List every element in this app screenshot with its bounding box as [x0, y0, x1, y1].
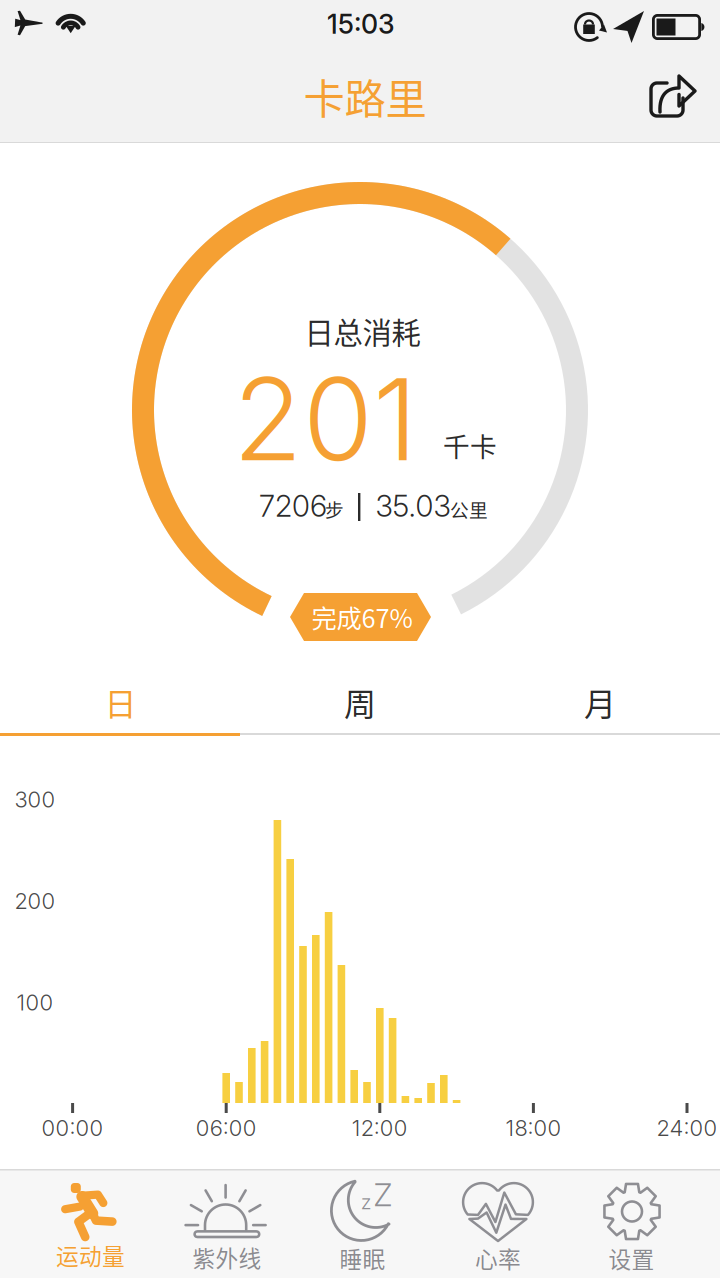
staticText: 7206: [259, 488, 327, 524]
staticText: 35.03: [375, 488, 450, 524]
staticText: 卡路里: [303, 66, 426, 126]
staticText: 设置: [608, 1242, 654, 1274]
staticText: 月: [584, 679, 616, 725]
button[interactable]: 心率: [426, 1170, 570, 1278]
button[interactable]: 周: [240, 666, 480, 738]
staticText: 周: [344, 679, 376, 725]
button[interactable]: 日: [0, 666, 240, 738]
staticText: 心率: [475, 1242, 521, 1274]
staticText: 100: [16, 989, 53, 1016]
button[interactable]: 卡路里: [235, 65, 495, 127]
staticText: 12:00: [352, 1115, 408, 1141]
staticText: 运动量: [56, 1239, 125, 1271]
staticText: 24:00: [656, 1115, 717, 1141]
button[interactable]: 运动量: [18, 1170, 162, 1278]
staticText: 201: [233, 350, 418, 487]
staticText: 步: [325, 495, 344, 522]
staticText: 公里: [450, 495, 488, 522]
staticText: 紫外线: [192, 1241, 261, 1273]
staticText: 日: [104, 679, 136, 725]
staticText: 00:00: [42, 1115, 104, 1141]
staticText: z: [361, 1190, 372, 1214]
staticText: 日总消耗: [304, 310, 420, 352]
button[interactable]: 月: [480, 666, 720, 738]
staticText: 300: [14, 786, 55, 813]
button[interactable]: z: [290, 1170, 434, 1278]
staticText: 18:00: [505, 1115, 561, 1141]
button[interactable]: 紫外线: [155, 1170, 299, 1278]
staticText: 200: [14, 888, 55, 914]
staticText: Z: [373, 1176, 392, 1213]
staticText: 06:00: [196, 1115, 257, 1141]
button[interactable]: 设置: [559, 1170, 703, 1278]
staticText: 完成67%: [311, 599, 412, 635]
staticText: 千卡: [443, 426, 497, 464]
staticText: 睡眠: [339, 1242, 385, 1274]
button[interactable]: Share: [635, 58, 711, 132]
staticText: 15:03: [327, 8, 395, 40]
